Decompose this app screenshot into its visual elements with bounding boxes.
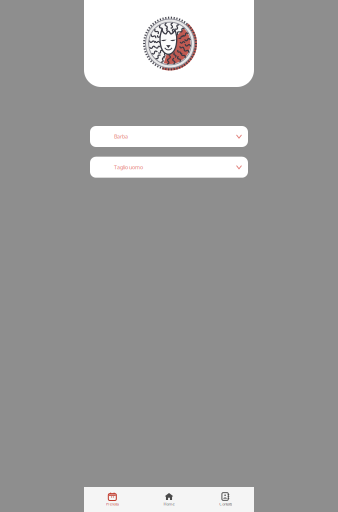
button[interactable]: Taglio uomo (90, 157, 248, 178)
button[interactable]: Contatti (197, 487, 254, 512)
button[interactable]: Barba (90, 126, 248, 147)
staticText: Taglio uomo (114, 164, 143, 171)
button[interactable]: Home (141, 487, 197, 512)
staticText: Prenota (106, 501, 119, 507)
button[interactable]: Prenota (84, 487, 141, 512)
staticText: Home (163, 501, 174, 507)
staticText: Barba (114, 133, 128, 140)
staticText: Contatti (219, 501, 232, 507)
